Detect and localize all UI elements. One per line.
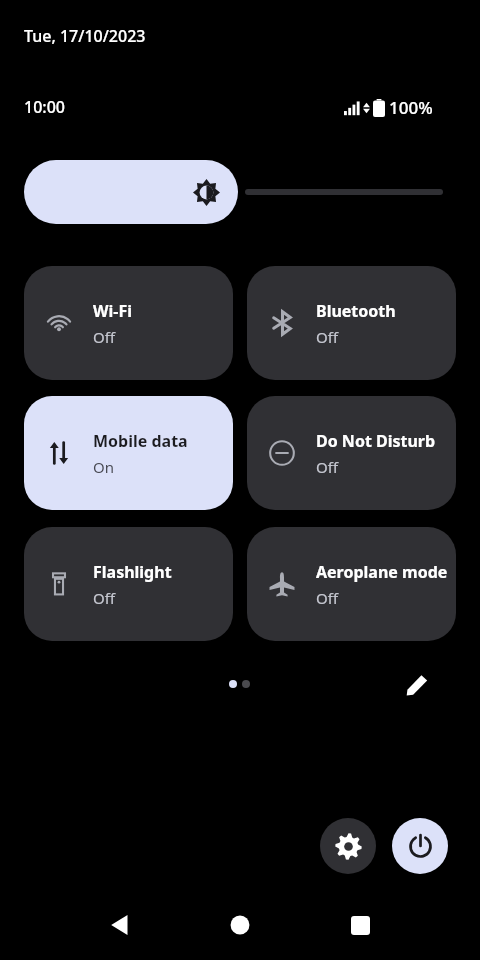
button[interactable]: Settings: [320, 818, 376, 874]
button[interactable]: Mobile data: [24, 396, 233, 510]
button[interactable]: Brightness: [24, 160, 456, 224]
staticText: Off: [316, 457, 339, 477]
button[interactable]: Edit tiles: [397, 664, 437, 704]
staticText: On: [93, 457, 114, 477]
button[interactable]: Aeroplane mode: [247, 527, 456, 641]
staticText: Tue, 17/10/2023: [24, 25, 146, 47]
button[interactable]: Home: [215, 900, 265, 950]
staticText: Bluetooth: [316, 300, 396, 322]
staticText: Aeroplane mode: [316, 561, 448, 583]
staticText: Off: [316, 327, 339, 347]
staticText: Off: [316, 588, 339, 608]
staticText: Mobile data: [93, 430, 188, 452]
button[interactable]: Do Not Disturb: [247, 396, 456, 510]
staticText: 100%: [389, 96, 433, 119]
staticText: Off: [93, 588, 116, 608]
staticText: Do Not Disturb: [316, 430, 436, 452]
button[interactable]: Flashlight: [24, 527, 233, 641]
button[interactable]: Recents: [335, 900, 385, 950]
staticText: Flashlight: [93, 561, 172, 583]
button[interactable]: Power: [392, 818, 448, 874]
button[interactable]: Bluetooth: [247, 266, 456, 380]
staticText: Off: [93, 327, 116, 347]
staticText: 10:00: [24, 96, 65, 118]
staticText: Wi-Fi: [93, 300, 132, 322]
button[interactable]: Wi-Fi: [24, 266, 233, 380]
button[interactable]: Back: [95, 900, 145, 950]
